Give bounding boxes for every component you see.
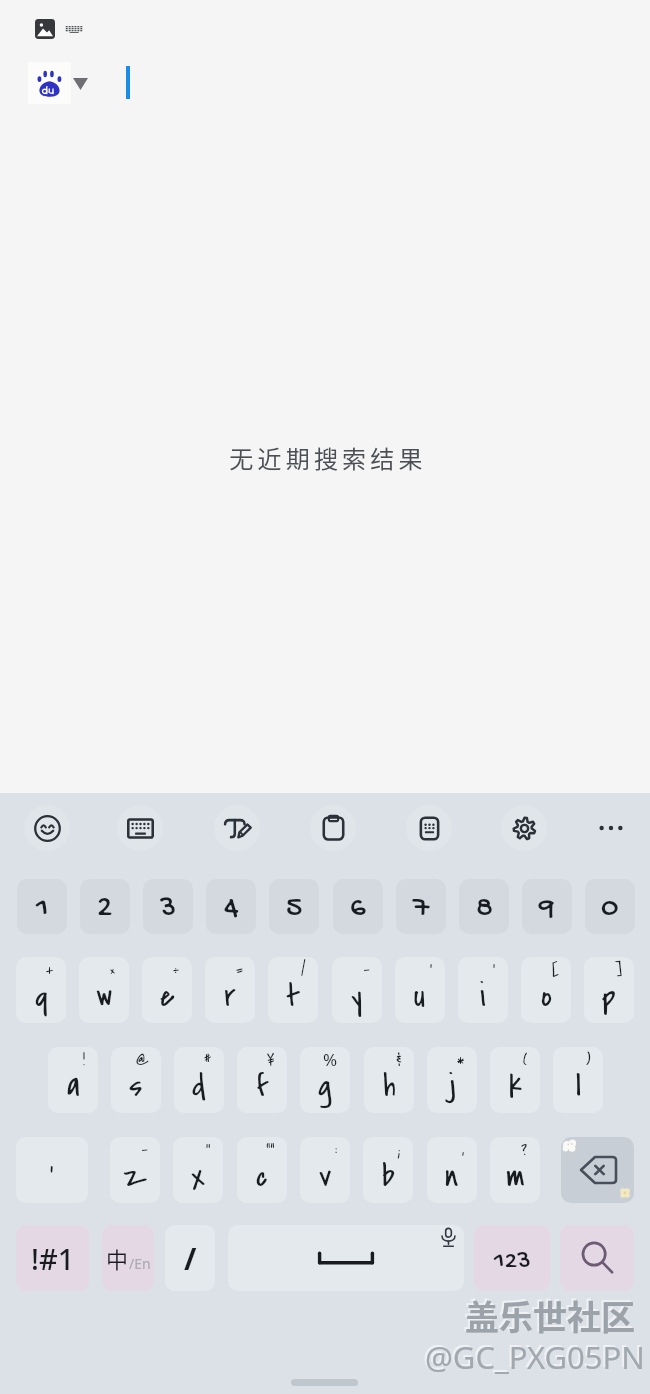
staticText: 7 [413,891,430,928]
button[interactable]: more [588,805,634,851]
button[interactable]: b [363,1137,413,1203]
button[interactable]: keyboard [117,805,163,851]
staticText: v [319,1154,332,1198]
staticText: 盖乐世社区 [465,1291,635,1340]
button[interactable]: c [237,1137,287,1203]
button[interactable]: s [111,1047,161,1113]
staticText: @GC_PXG05PN [425,1336,645,1378]
button[interactable]: x [173,1137,223,1203]
button[interactable]: 2 [80,879,130,934]
button[interactable]: k [490,1047,540,1113]
button[interactable]: clipboard [310,805,356,851]
staticText: z [123,1154,148,1198]
button[interactable]: d [174,1047,224,1113]
button[interactable]: y [332,957,382,1023]
button[interactable]: 9 [522,879,572,934]
button[interactable]: ’ [16,1137,88,1203]
staticText: k [509,1064,522,1108]
button[interactable]: 中 [102,1225,154,1291]
staticText: – [363,958,370,981]
staticText: 盖乐世社区 [463,1289,633,1338]
button[interactable]: r [205,957,255,1023]
staticText: i [480,974,486,1018]
staticText: l [576,1064,581,1108]
staticText: c [256,1154,268,1198]
staticText: ) [586,1048,591,1071]
button[interactable]: 6 [333,879,383,934]
button[interactable]: / [165,1225,215,1291]
button[interactable]: Expand [71,74,89,94]
button[interactable]: t [268,957,318,1023]
button[interactable]: j [427,1047,477,1113]
button[interactable]: v [300,1137,350,1203]
staticText: 5 [286,891,303,928]
staticText: n [445,1154,459,1198]
button[interactable]: z [110,1137,160,1203]
staticText: ‘ [430,958,433,981]
button[interactable]: f [237,1047,287,1113]
button[interactable]: q [16,957,66,1023]
button[interactable]: Image [31,15,59,43]
button[interactable]: l [553,1047,603,1113]
staticText: : [335,1138,338,1161]
staticText: e [160,974,175,1018]
button[interactable]: 4 [206,879,256,934]
staticText: x [191,1154,205,1198]
staticText: m [506,1154,525,1198]
button[interactable]: numpad [406,805,452,851]
button[interactable]: 123 [474,1225,550,1291]
button[interactable]: m [490,1137,540,1203]
button[interactable]: handwriting [214,805,260,851]
button[interactable]: a [48,1047,98,1113]
button[interactable]: n [427,1137,477,1203]
staticText: @ [136,1048,149,1071]
staticText: / [184,1238,197,1279]
staticText: ÷ [173,958,180,981]
button[interactable]: 8 [459,879,509,934]
button[interactable]: p [584,957,634,1023]
button[interactable]: Space [228,1225,464,1291]
staticText: q [35,974,48,1018]
staticText: w [96,974,113,1018]
button[interactable]: w [79,957,129,1023]
staticText: 123 [494,1247,531,1278]
button[interactable]: e [142,957,192,1023]
staticText: ¥ [267,1048,275,1071]
button[interactable]: g [300,1047,350,1113]
staticText: p [602,974,616,1018]
staticText: % [323,1048,338,1071]
button[interactable]: h [364,1047,414,1113]
button[interactable]: 0 [585,879,635,934]
staticText: g [318,1064,332,1108]
button[interactable]: 1 [17,879,67,934]
button[interactable]: Backspace [561,1137,634,1203]
staticText: s [129,1064,143,1108]
button[interactable]: 3 [143,879,193,934]
staticText: ’ [493,958,496,981]
button[interactable]: 5 [269,879,319,934]
button[interactable]: 7 [396,879,446,934]
staticText: y [351,974,363,1018]
staticText: 3 [160,891,177,928]
staticText: 中 [106,1242,129,1274]
button[interactable]: Baidu input [28,62,71,104]
button[interactable]: !#1 [16,1225,89,1291]
staticText: u [414,974,426,1018]
staticText: = [236,958,243,981]
button[interactable]: o [521,957,571,1023]
staticText: j [449,1064,456,1108]
button[interactable]: i [458,957,508,1023]
button[interactable]: settings [501,805,547,851]
staticText: o [541,974,552,1018]
staticText: ? [521,1138,528,1161]
button[interactable]: Search [560,1225,634,1291]
button[interactable]: Keyboard [60,15,88,43]
button[interactable]: emoji [24,805,70,851]
button[interactable]: u [395,957,445,1023]
staticText: 6 [350,891,366,928]
staticText: ; [398,1138,401,1161]
staticText: t [286,974,301,1018]
staticText: + [46,958,54,981]
staticText: - [141,1138,148,1161]
staticText: 2 [97,891,113,928]
